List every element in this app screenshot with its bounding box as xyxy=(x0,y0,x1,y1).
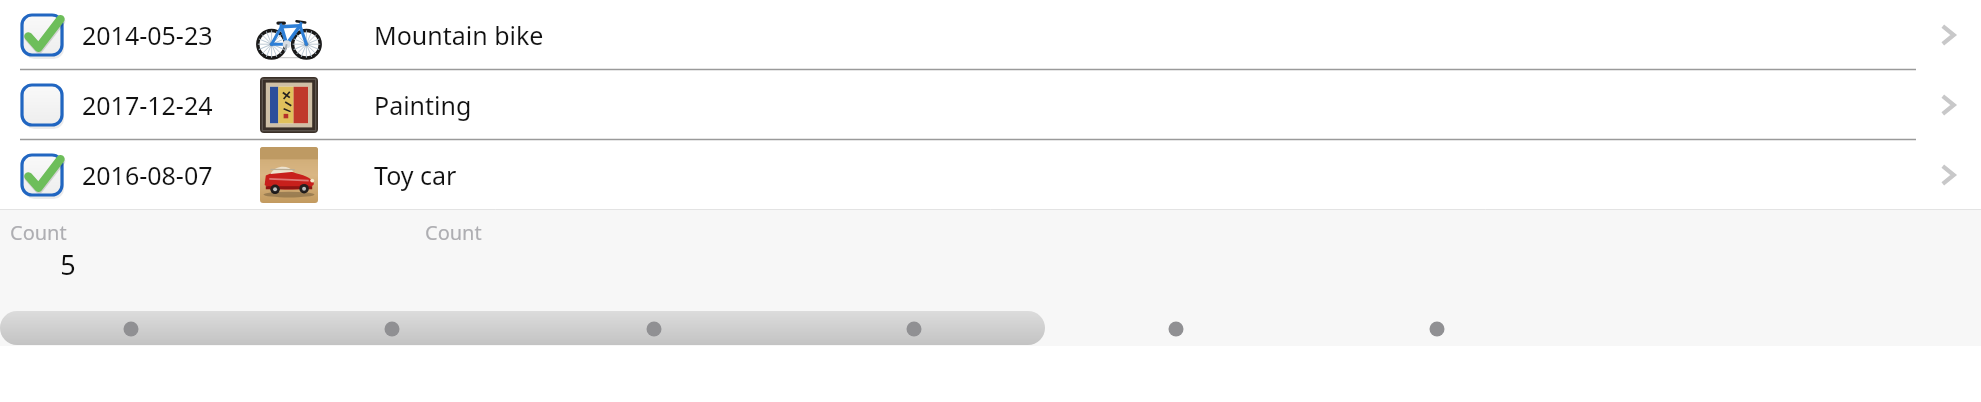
button[interactable]: Checked xyxy=(20,153,64,197)
button[interactable]: Open details xyxy=(1915,70,1981,139)
button[interactable]: Checked xyxy=(0,0,1981,69)
staticText: Count xyxy=(10,219,67,246)
staticText: 2017-12-24 xyxy=(82,88,213,122)
staticText: Count xyxy=(425,219,482,246)
button[interactable]: Unchecked xyxy=(0,70,1981,139)
staticText: 2016-08-07 xyxy=(82,158,213,192)
staticText: Toy car xyxy=(374,158,457,192)
staticText: 5 xyxy=(60,246,76,283)
staticText: Painting xyxy=(374,88,472,122)
button[interactable]: Unchecked xyxy=(20,83,64,127)
button[interactable]: Open details xyxy=(1915,0,1981,69)
staticText: 2014-05-23 xyxy=(82,18,213,52)
staticText: Mountain bike xyxy=(374,18,544,52)
button[interactable]: Checked xyxy=(20,13,64,57)
button[interactable]: Open details xyxy=(1915,140,1981,209)
button[interactable]: Checked xyxy=(0,140,1981,209)
